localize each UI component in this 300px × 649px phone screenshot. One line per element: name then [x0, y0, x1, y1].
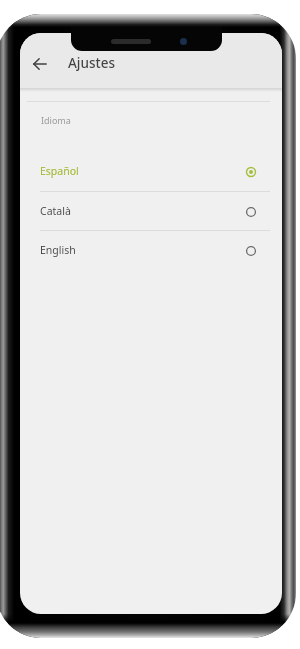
button[interactable]: Español	[20, 151, 282, 191]
staticText: Español	[40, 164, 79, 178]
button[interactable]: Català	[20, 191, 282, 231]
staticText: Idioma	[41, 114, 71, 126]
button[interactable]: Back	[27, 51, 53, 77]
button[interactable]: English	[20, 230, 282, 270]
staticText: Ajustes	[68, 54, 115, 72]
staticText: Català	[40, 204, 71, 218]
staticText: English	[40, 243, 76, 257]
